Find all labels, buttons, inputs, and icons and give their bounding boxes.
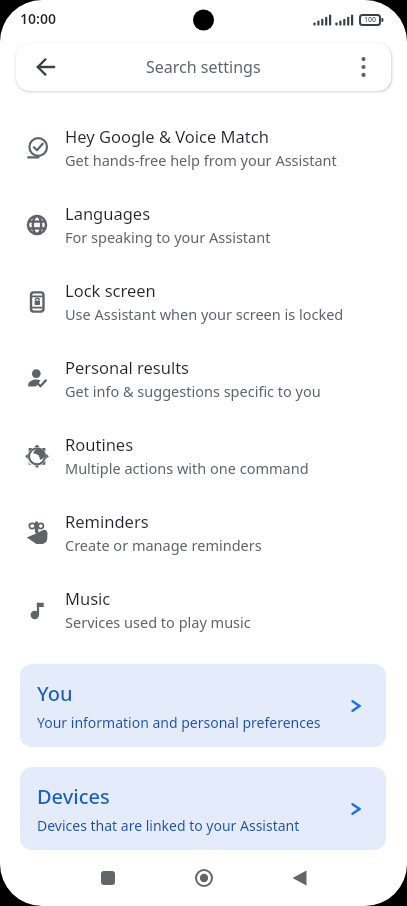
staticText: Get info & suggestions specific to you — [65, 381, 321, 401]
staticText: Languages — [65, 202, 151, 224]
button[interactable] — [91, 861, 125, 895]
button[interactable]: Lock screen — [0, 263, 407, 340]
staticText: Devices that are linked to your Assistan… — [37, 816, 300, 835]
staticText: Devices — [37, 783, 110, 810]
staticText: Reminders — [65, 510, 149, 532]
button[interactable]: Personal results — [0, 340, 407, 417]
staticText: For speaking to your Assistant — [65, 227, 271, 247]
staticText: Multiple actions with one command — [65, 458, 309, 478]
button[interactable]: Languages — [0, 186, 407, 263]
staticText: Routines — [65, 433, 134, 455]
button[interactable]: You — [20, 664, 386, 747]
staticText: Your information and personal preference… — [37, 713, 321, 732]
staticText: Personal results — [65, 356, 189, 378]
staticText: Use Assistant when your screen is locked — [65, 304, 344, 324]
staticText: Lock screen — [65, 279, 156, 301]
staticText: Services used to play music — [65, 612, 251, 632]
staticText: 10:00 — [20, 9, 56, 28]
staticText: Music — [65, 587, 111, 609]
staticText: Get hands-free help from your Assistant — [65, 150, 337, 170]
staticText: Search settings — [146, 56, 261, 78]
button[interactable]: Search settings — [16, 43, 391, 91]
button[interactable] — [283, 861, 316, 895]
button[interactable]: Reminders — [0, 494, 407, 571]
staticText: 100 — [364, 15, 377, 25]
staticText: Create or manage reminders — [65, 535, 262, 555]
button[interactable]: Routines — [0, 417, 407, 494]
staticText: Hey Google & Voice Match — [65, 125, 269, 147]
button[interactable] — [187, 861, 221, 895]
button[interactable]: Hey Google & Voice Match — [0, 109, 407, 186]
staticText: You — [37, 680, 73, 707]
button[interactable]: Music — [0, 571, 407, 648]
button[interactable]: Devices — [20, 767, 386, 850]
